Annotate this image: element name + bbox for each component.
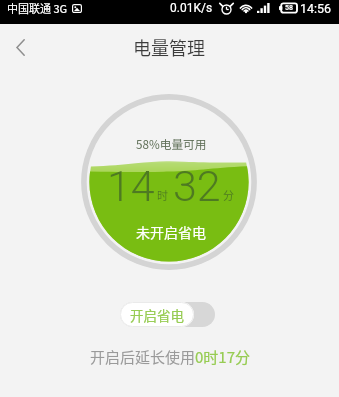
staticText: 58 [285,4,293,12]
staticText: 14 [107,161,155,211]
staticText: 分 [223,187,234,203]
staticText: 14:56 [300,1,332,16]
button[interactable]: 开启省电 [120,302,215,327]
staticText: 0.01K/s [170,1,213,15]
staticText: 开启省电 [130,305,184,325]
staticText: 未开启省电 [136,222,206,242]
staticText: 32 [173,161,221,211]
staticText: 58%电量可用 [136,135,207,152]
staticText: 电量管理 [133,34,205,60]
button[interactable]: Back [0,24,42,66]
staticText: 开启后延长使用0时17分 [90,346,250,368]
staticText: 时 [157,187,168,203]
staticText: 中国联通 3G [7,0,68,16]
